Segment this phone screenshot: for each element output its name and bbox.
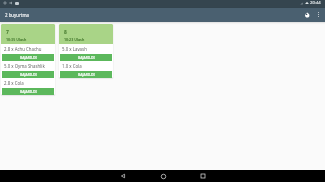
staticText: 5.0 x Oyma Shashlik [4, 63, 45, 69]
button[interactable]: BAJARILDI [2, 88, 54, 95]
staticText: 10:23 Ulash [64, 37, 85, 42]
button[interactable]: 8 [59, 24, 113, 78]
staticText: 2.8 x Achu Chachu [4, 46, 42, 52]
staticText: BAJARILDI [78, 55, 95, 60]
staticText: BAJARILDI [20, 55, 37, 60]
staticText: 1.0 x Cola [62, 63, 82, 69]
staticText: BAJARILDI [20, 89, 37, 94]
button[interactable]: BAJARILDI [2, 54, 54, 61]
button[interactable]: Recents [193, 170, 213, 182]
staticText: 2.8 x Cola [4, 80, 24, 86]
button[interactable]: BAJARILDI [2, 71, 54, 78]
button[interactable]: BAJARILDI [60, 54, 112, 61]
staticText: 8 [64, 29, 67, 36]
staticText: 2 buyurtma [5, 12, 29, 18]
button[interactable]: Home [153, 170, 173, 182]
button[interactable]: More options [313, 9, 324, 20]
staticText: 5.0 x Lavash [62, 46, 87, 52]
staticText: BAJARILDI [20, 72, 37, 77]
button[interactable]: BAJARILDI [60, 71, 112, 78]
staticText: 20:44 [310, 0, 321, 6]
button[interactable]: Back [113, 170, 133, 182]
staticText: 7 [6, 29, 9, 36]
staticText: BAJARILDI [78, 72, 95, 77]
button[interactable]: Notifications [300, 8, 313, 21]
button[interactable]: 7 [1, 24, 55, 95]
staticText: 10:35 Ulash [6, 37, 27, 42]
